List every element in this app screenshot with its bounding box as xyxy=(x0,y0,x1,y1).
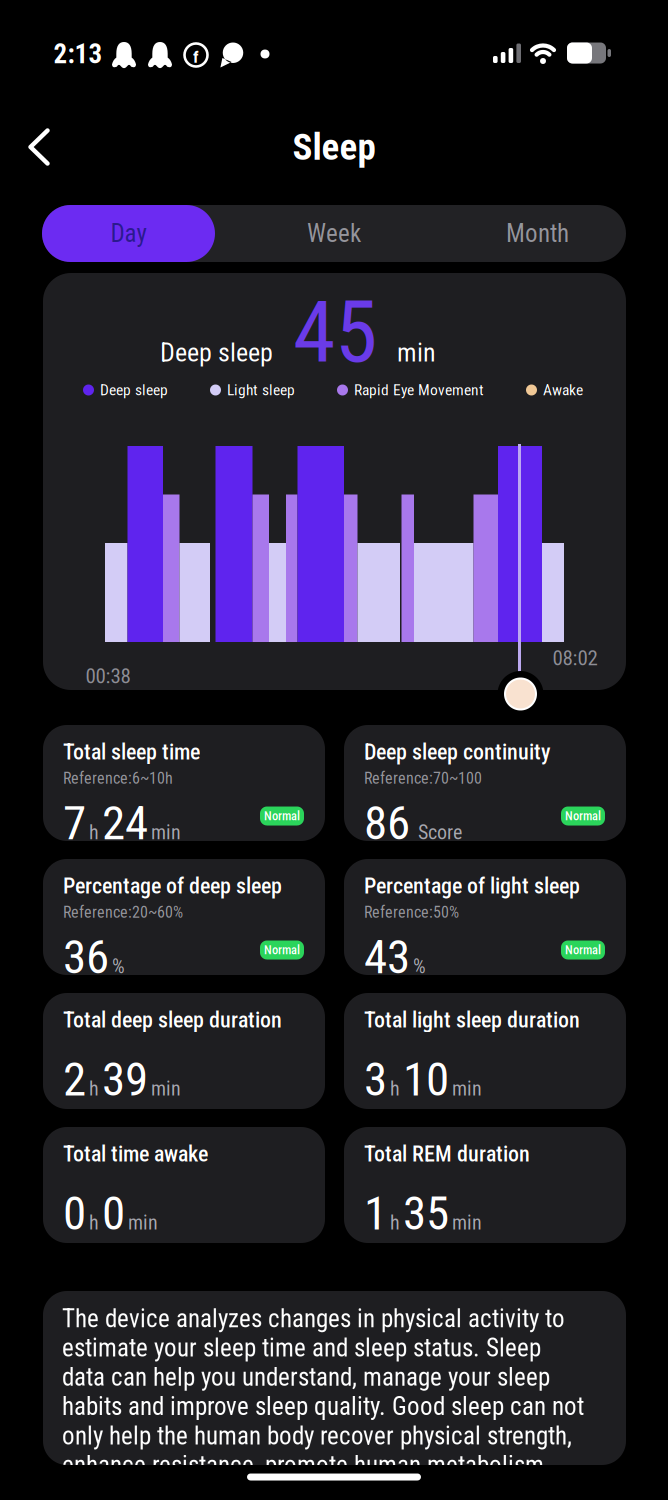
staticText: Normal xyxy=(264,943,300,957)
staticText: % xyxy=(413,955,426,978)
staticText: h xyxy=(89,1077,99,1100)
staticText: 0 xyxy=(63,1186,86,1241)
staticText: Light sleep xyxy=(227,381,295,399)
staticText: 7 xyxy=(63,795,86,851)
staticText: Deep sleep xyxy=(100,381,168,399)
staticText: Total light sleep duration xyxy=(364,1007,580,1033)
staticText: min xyxy=(151,821,181,844)
button[interactable]: Month xyxy=(447,205,627,262)
staticText: 10 xyxy=(403,1052,449,1107)
button[interactable]: Back xyxy=(18,118,59,175)
staticText: 00:38 xyxy=(85,664,130,688)
staticText: Total REM duration xyxy=(364,1141,530,1167)
staticText: Week xyxy=(307,219,361,248)
staticText: 24 xyxy=(102,795,148,851)
staticText: Reference:70~100 xyxy=(364,769,482,788)
staticText: Day xyxy=(110,219,146,248)
staticText: 36 xyxy=(63,929,109,985)
staticText: 0 xyxy=(102,1186,125,1241)
staticText: min xyxy=(397,337,436,368)
staticText: Rapid Eye Movement xyxy=(354,381,484,399)
staticText: Reference:50% xyxy=(364,903,459,922)
staticText: min xyxy=(128,1211,158,1234)
staticText: Total time awake xyxy=(63,1141,208,1167)
staticText: Deep sleep xyxy=(160,337,273,368)
staticText: Total sleep time xyxy=(63,739,200,765)
staticText: 08:02 xyxy=(552,646,597,670)
staticText: Sleep xyxy=(292,125,375,169)
staticText: Awake xyxy=(543,381,583,399)
button[interactable]: Day xyxy=(42,205,215,262)
button[interactable]: Chart time handle xyxy=(504,677,537,710)
staticText: 2:13 xyxy=(53,38,102,70)
staticText: % xyxy=(112,955,125,978)
staticText: min xyxy=(452,1211,482,1234)
staticText: h xyxy=(390,1211,400,1234)
staticText: Month xyxy=(506,219,569,248)
staticText: The device analyzes changes in physical … xyxy=(62,1304,584,1480)
staticText: Normal xyxy=(565,809,601,823)
staticText: Normal xyxy=(565,943,601,957)
staticText: h xyxy=(390,1077,400,1100)
staticText: 39 xyxy=(102,1052,148,1107)
staticText: 2 xyxy=(63,1052,86,1107)
staticText: Reference:6~10h xyxy=(63,769,173,788)
staticText: Percentage of light sleep xyxy=(364,873,580,899)
staticText: h xyxy=(89,1211,99,1234)
staticText: 1 xyxy=(364,1186,387,1241)
staticText: f xyxy=(193,47,199,67)
staticText: Percentage of deep sleep xyxy=(63,873,282,899)
staticText: Score xyxy=(413,821,462,844)
staticText: min xyxy=(151,1077,181,1100)
staticText: min xyxy=(452,1077,482,1100)
staticText: h xyxy=(89,821,99,844)
staticText: 86 xyxy=(364,795,410,851)
staticText: 3 xyxy=(364,1052,387,1107)
staticText: 45 xyxy=(293,282,377,382)
button[interactable]: Week xyxy=(244,205,424,262)
staticText: Normal xyxy=(264,809,300,823)
staticText: Deep sleep continuity xyxy=(364,739,551,765)
staticText: 35 xyxy=(403,1186,449,1241)
staticText: Total deep sleep duration xyxy=(63,1007,282,1033)
staticText: 43 xyxy=(364,929,410,985)
staticText: Reference:20~60% xyxy=(63,903,183,922)
